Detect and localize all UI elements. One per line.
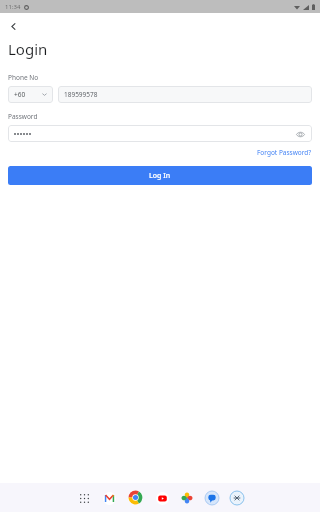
staticText: +60 <box>14 90 26 99</box>
button[interactable]: Back <box>5 18 21 34</box>
button[interactable]: YouTube <box>154 490 170 506</box>
button[interactable]: +60 <box>8 86 53 103</box>
button[interactable]: 189599578 <box>58 86 312 103</box>
button[interactable]: Log In <box>8 166 312 185</box>
button[interactable]: Photos <box>179 490 195 506</box>
staticText: 11:34 <box>5 3 21 11</box>
button[interactable]: Show password <box>294 128 306 140</box>
button[interactable]: Gmail <box>101 490 117 506</box>
button[interactable]: Messages <box>204 490 220 506</box>
button[interactable]: Forgot Password? <box>8 148 312 157</box>
staticText: Log In <box>149 171 171 181</box>
staticText: 189599578 <box>64 90 98 99</box>
staticText: Forgot Password? <box>257 148 312 157</box>
button[interactable]: Show password <box>8 125 312 142</box>
button[interactable]: Chrome <box>126 488 145 507</box>
staticText: Login <box>8 39 48 59</box>
staticText: Phone No <box>8 73 39 82</box>
staticText: Password <box>8 112 38 121</box>
button[interactable]: Assistant <box>229 490 245 506</box>
button[interactable]: All apps <box>76 490 92 506</box>
